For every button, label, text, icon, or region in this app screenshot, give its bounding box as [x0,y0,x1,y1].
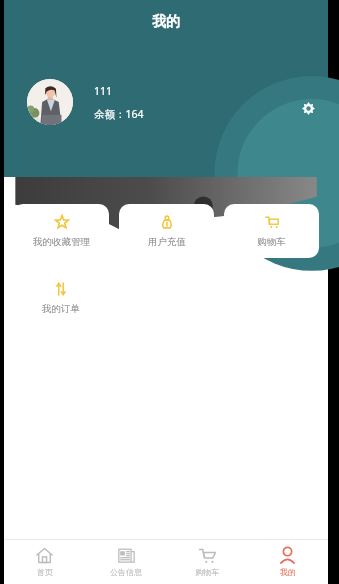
staticText: 购物车 [195,567,219,577]
staticText: CSDN @001039692211 [32,537,214,560]
button[interactable]: 首页 [4,540,85,584]
button[interactable]: 我的 [247,540,328,584]
staticText: 我的订单 [42,303,80,315]
button[interactable]: 用户充值 [119,204,214,258]
button[interactable]: 购物车 [166,540,247,584]
button[interactable]: 111 [27,79,144,125]
staticText: 购物车 [257,236,286,248]
staticText: 首页 [37,567,53,577]
button[interactable]: 我的订单 [13,271,109,325]
staticText: 公告信息 [110,567,142,577]
button[interactable]: 我的收藏管理 [13,204,109,258]
staticText: 我的收藏管理 [33,236,90,248]
staticText: 用户充值 [148,236,186,248]
staticText: 111 [94,84,113,98]
staticText: 余额：164 [94,107,144,121]
button[interactable]: 购物车 [224,204,319,258]
button[interactable]: 公告信息 [85,540,166,584]
staticText: 我的 [280,567,296,577]
button[interactable]: Settings [298,98,318,118]
staticText: 我的 [152,13,180,31]
